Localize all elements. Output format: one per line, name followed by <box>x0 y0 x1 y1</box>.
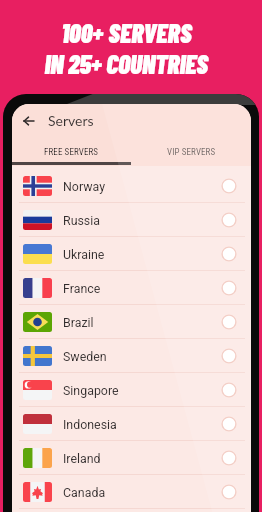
button[interactable]: Ireland <box>12 441 251 475</box>
staticText: Singapore <box>63 383 119 398</box>
button[interactable]: Russia <box>12 203 251 237</box>
staticText: Brazil <box>63 315 94 330</box>
staticText: Ireland <box>63 451 101 466</box>
staticText: IN 25+ COUNTRIES <box>44 48 208 79</box>
button[interactable]: Canada <box>12 475 251 509</box>
button[interactable]: Norway <box>12 169 251 203</box>
button[interactable]: Indonesia <box>12 407 251 441</box>
staticText: Russia <box>63 213 101 228</box>
button[interactable]: Brazil <box>12 305 251 339</box>
staticText: Servers <box>48 112 94 129</box>
button[interactable]: Singapore <box>12 373 251 407</box>
button[interactable]: Back <box>12 104 40 136</box>
staticText: France <box>63 281 101 296</box>
staticText: Sweden <box>63 349 107 364</box>
staticText: FREE SERVERS <box>44 147 99 158</box>
button[interactable]: Sweden <box>12 339 251 373</box>
button[interactable]: FREE SERVERS <box>12 136 131 166</box>
button[interactable]: VIP SERVERS <box>131 136 251 166</box>
button[interactable]: Ukraine <box>12 237 251 271</box>
staticText: VIP SERVERS <box>167 147 216 158</box>
staticText: Ukraine <box>63 247 105 262</box>
staticText: Indonesia <box>63 417 117 432</box>
staticText: Norway <box>63 179 106 194</box>
button[interactable]: France <box>12 271 251 305</box>
staticText: Canada <box>63 485 106 500</box>
staticText: 100+ SERVERS <box>61 17 192 48</box>
